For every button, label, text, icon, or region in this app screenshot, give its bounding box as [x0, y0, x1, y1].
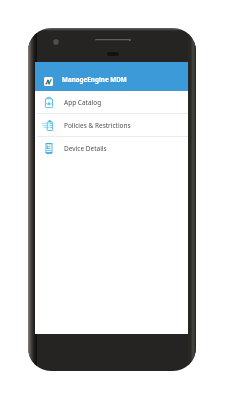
staticText: Device Details: [64, 144, 107, 153]
button[interactable]: ManageEngine MDM: [35, 62, 188, 91]
other: Front camera: [53, 39, 59, 45]
staticText: App Catalog: [64, 98, 102, 107]
button[interactable]: App Catalog: [35, 91, 188, 113]
staticText: Policies & Restrictions: [64, 121, 131, 130]
button[interactable]: Device Details: [35, 137, 188, 159]
staticText: ManageEngine MDM: [62, 75, 127, 84]
button[interactable]: Policies & Restrictions: [35, 114, 188, 136]
